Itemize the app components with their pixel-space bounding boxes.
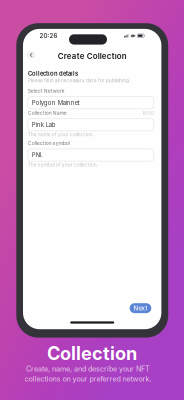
button[interactable]: Pink Lab [28,119,154,131]
staticText: Select Network [28,88,65,94]
button[interactable]: PNL [28,149,154,161]
staticText: Collection details [28,70,78,77]
staticText: Pink Lab [32,121,56,128]
staticText: Polygon Mainnet [32,99,80,106]
staticText: Collection Name [28,110,67,116]
staticText: The symbol of your collection. [28,162,98,168]
staticText: Collection [47,342,137,364]
staticText: The name of your collection. [28,131,94,137]
staticText: Please fill in all necessary data for pu… [28,78,130,83]
staticText: Create, name, and describe your NFT [26,365,150,373]
button[interactable]: Next [130,303,151,313]
staticText: 20:26 [40,32,58,39]
staticText: 8/50 [143,110,154,116]
staticText: Next [133,304,147,312]
staticText: collections on your preferred network. [24,375,151,383]
staticText: PNL [32,151,43,159]
staticText: Create Collection [58,51,127,61]
button[interactable]: Back [28,51,35,58]
staticText: Collection symbol [28,140,70,146]
button[interactable]: Polygon Mainnet [28,97,154,109]
